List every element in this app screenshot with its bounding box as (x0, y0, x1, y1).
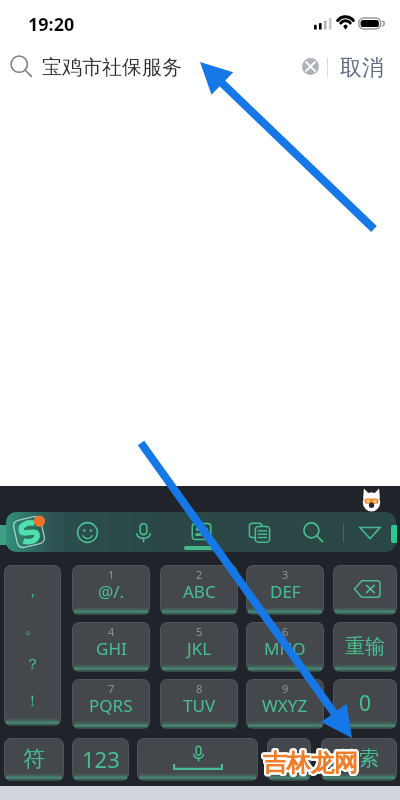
staticText: 重输 (345, 634, 385, 659)
button[interactable]: 取消 (334, 50, 390, 86)
staticText: 1 (108, 567, 115, 582)
staticText: 搜索 (339, 746, 379, 771)
staticText: 19:20 (28, 12, 75, 37)
staticText: DEF (270, 580, 301, 603)
button[interactable]: Search (291, 512, 335, 552)
staticText: 吉林龙网 (263, 746, 358, 776)
button[interactable]: 9 WXYZ (246, 679, 324, 729)
staticText: 吉林龙网 (265, 747, 360, 777)
button[interactable]: Contact card (179, 512, 223, 552)
staticText: 。 (25, 619, 40, 638)
staticText: 2 (196, 567, 203, 582)
staticText: ， (280, 747, 298, 770)
staticText: 6 (282, 624, 289, 639)
button[interactable]: 符 (4, 738, 64, 781)
staticText: ABC (183, 580, 216, 603)
button[interactable]: Clipboard (237, 512, 281, 552)
button[interactable]: 重输 (333, 622, 397, 672)
staticText: JKL (187, 637, 212, 660)
staticText: 符 (23, 745, 45, 773)
button[interactable]: 123 (72, 738, 129, 781)
staticText: 吉林龙网 (263, 748, 358, 778)
button[interactable]: 7 PQRS (72, 679, 150, 729)
button[interactable]: 3 DEF (246, 565, 324, 615)
button[interactable]: 5 JKL (160, 622, 238, 672)
button[interactable]: ， (267, 738, 311, 781)
staticText: 吉林龙网 (261, 747, 356, 777)
staticText: 吉林龙网 (264, 750, 359, 780)
button[interactable]: Sogou input (6, 512, 52, 552)
staticText: ！ (25, 692, 40, 711)
staticText: 123 (82, 744, 120, 774)
staticText: 3 (282, 567, 289, 582)
button[interactable]: 8 TUV (160, 679, 238, 729)
staticText: 吉林龙网 (262, 746, 357, 776)
button[interactable]: Space (137, 738, 258, 781)
staticText: 吉林龙网 (265, 748, 360, 778)
staticText: MNO (264, 637, 306, 660)
staticText: @/. (98, 580, 125, 603)
button[interactable]: Hide keyboard (348, 512, 392, 552)
button[interactable]: Emoji (65, 512, 109, 552)
staticText: 5 (196, 624, 203, 639)
staticText: ， (25, 582, 40, 601)
staticText: 吉林龙网 (261, 748, 356, 778)
button[interactable]: 1 @/. (72, 565, 150, 615)
staticText: WXYZ (262, 694, 308, 717)
button[interactable]: Clear text (296, 52, 325, 81)
staticText: 吉林龙网 (262, 750, 357, 780)
button[interactable]: Search (7, 52, 35, 80)
staticText: TUV (183, 694, 216, 717)
staticText: 4 (108, 624, 115, 639)
button[interactable]: Voice input (121, 512, 165, 552)
staticText: GHI (96, 637, 127, 660)
button[interactable]: 搜索 (321, 738, 397, 781)
staticText: 0 (359, 689, 372, 718)
button[interactable]: 0 (333, 679, 397, 729)
staticText: 吉林龙网 (265, 749, 360, 779)
button[interactable]: Punctuation (4, 565, 61, 726)
staticText: PQRS (89, 694, 133, 717)
button[interactable]: Backspace (333, 565, 397, 615)
staticText: 吉林龙网 (263, 750, 358, 780)
staticText: 9 (282, 681, 289, 696)
staticText: 吉林龙网 (264, 746, 359, 776)
staticText: ？ (25, 655, 40, 674)
button[interactable]: 2 ABC (160, 565, 238, 615)
button[interactable]: 6 MNO (246, 622, 324, 672)
button[interactable]: Keyboard skin avatar (362, 488, 381, 512)
staticText: 吉林龙网 (261, 749, 356, 779)
staticText: 宝鸡市社保服务 (42, 55, 182, 80)
staticText: 7 (108, 681, 115, 696)
staticText: 取消 (340, 54, 384, 82)
staticText: 8 (196, 681, 203, 696)
button[interactable]: 4 GHI (72, 622, 150, 672)
